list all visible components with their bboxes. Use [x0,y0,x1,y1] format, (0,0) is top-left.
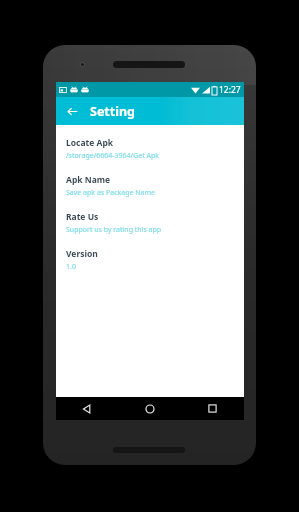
staticText: Setting [90,103,135,120]
staticText: 1.0 [66,262,76,272]
staticText: Apk Name [66,174,111,186]
button[interactable]: Rate Us [66,211,234,235]
staticText: Version [66,248,98,260]
button[interactable]: Back [62,101,82,121]
button[interactable]: Apk Name [66,174,234,198]
button[interactable]: Home [118,397,181,420]
staticText: Save apk as Package Name [66,188,155,198]
button[interactable]: Recents [181,397,244,420]
staticText: 12:27 [219,84,241,96]
button[interactable]: Locate Apk [66,137,234,161]
button[interactable]: Back [56,397,118,420]
staticText: /storage/6664-3964/Get Apk [66,151,160,161]
staticText: Support us by rating this app [66,225,162,235]
staticText: Rate Us [66,211,99,223]
button[interactable]: Version [66,248,234,272]
staticText: Locate Apk [66,137,114,149]
